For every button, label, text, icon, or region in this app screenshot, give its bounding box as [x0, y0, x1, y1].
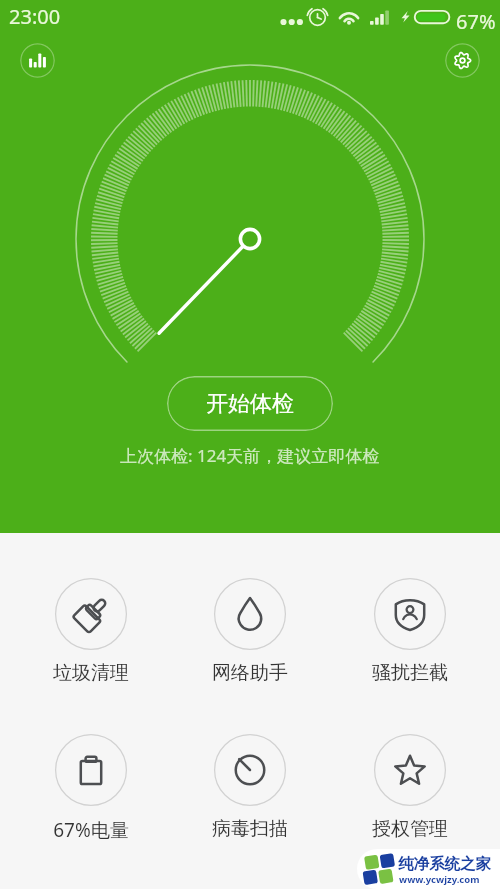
staticText: 垃圾清理 [53, 661, 129, 685]
button[interactable]: 垃圾清理 [22, 578, 160, 685]
staticText: 骚扰拦截 [372, 661, 448, 685]
button[interactable]: Statistics [20, 43, 55, 78]
staticText: 上次体检: 124天前，建议立即体检 [120, 444, 380, 467]
staticText: 67% [456, 8, 496, 35]
staticText: 23:00 [9, 3, 61, 30]
staticText: 开始体检 [206, 390, 294, 418]
button[interactable]: 开始体检 [167, 376, 333, 431]
button[interactable]: 67%电量 [22, 734, 160, 843]
staticText: 授权管理 [372, 817, 448, 841]
staticText: 病毒扫描 [212, 817, 288, 841]
staticText: www.ycwjzy.com [399, 873, 480, 886]
button[interactable]: 网络助手 [181, 578, 319, 685]
button[interactable]: Settings [445, 43, 480, 78]
staticText: 67%电量 [53, 817, 129, 843]
staticText: 纯净系统之家 [398, 854, 491, 874]
button[interactable]: 骚扰拦截 [341, 578, 479, 685]
button[interactable]: 病毒扫描 [181, 734, 319, 841]
button[interactable]: 授权管理 [341, 734, 479, 841]
staticText: 网络助手 [212, 661, 288, 685]
